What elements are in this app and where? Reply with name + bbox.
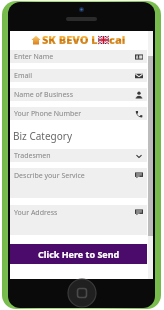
button[interactable]: Your Phone Number xyxy=(10,107,147,120)
staticText: Describe your Service xyxy=(14,171,135,181)
button[interactable]: Enter Name xyxy=(10,50,147,63)
button[interactable]: Home xyxy=(68,279,96,307)
staticText: Enter Name xyxy=(14,52,135,62)
staticText: cal xyxy=(109,32,126,47)
button[interactable]: Email xyxy=(10,69,147,82)
staticText: Email xyxy=(14,71,135,81)
staticText: SK BEVO L xyxy=(42,32,98,47)
staticText: Tradesmen xyxy=(14,151,135,161)
staticText: Biz Category xyxy=(13,129,72,143)
button[interactable]: Click Here to Send xyxy=(10,244,147,264)
staticText: Your Address xyxy=(14,208,135,218)
staticText: Click Here to Send xyxy=(38,248,120,260)
button[interactable]: Describe your Service xyxy=(10,168,147,198)
button[interactable]: Tradesmen xyxy=(10,149,147,162)
staticText: Your Phone Number xyxy=(14,109,135,119)
staticText: Name of Business xyxy=(14,90,135,100)
button[interactable]: Your Address xyxy=(10,205,147,235)
button[interactable]: Name of Business xyxy=(10,88,147,101)
